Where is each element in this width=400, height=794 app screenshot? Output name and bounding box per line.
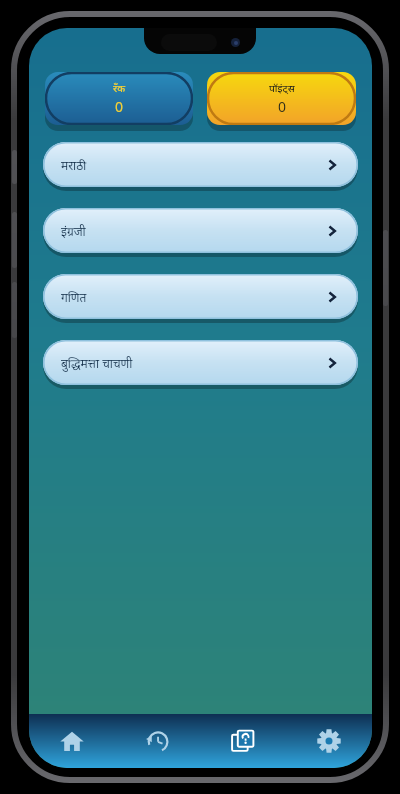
staticText: मराठी	[61, 157, 87, 173]
button[interactable]: इंग्रजी	[43, 208, 358, 253]
button[interactable]: गणित	[43, 274, 358, 319]
staticText: पॉइंट्स	[269, 81, 295, 95]
button[interactable]: Home	[29, 714, 114, 768]
staticText: बुद्धिमत्ता चाचणी	[61, 355, 133, 371]
button[interactable]: मराठी	[43, 142, 358, 187]
button[interactable]: History	[114, 714, 200, 768]
button[interactable]: पॉइंट्स	[207, 72, 356, 125]
staticText: 0	[278, 97, 287, 116]
staticText: इंग्रजी	[61, 223, 86, 239]
button[interactable]: Settings	[286, 714, 372, 768]
staticText: रॅंक	[113, 81, 126, 95]
button[interactable]: बुद्धिमत्ता चाचणी	[43, 340, 358, 385]
staticText: गणित	[61, 289, 87, 305]
button[interactable]: रॅंक	[45, 72, 193, 125]
staticText: 0	[115, 97, 124, 116]
button[interactable]: Quiz	[200, 714, 286, 768]
